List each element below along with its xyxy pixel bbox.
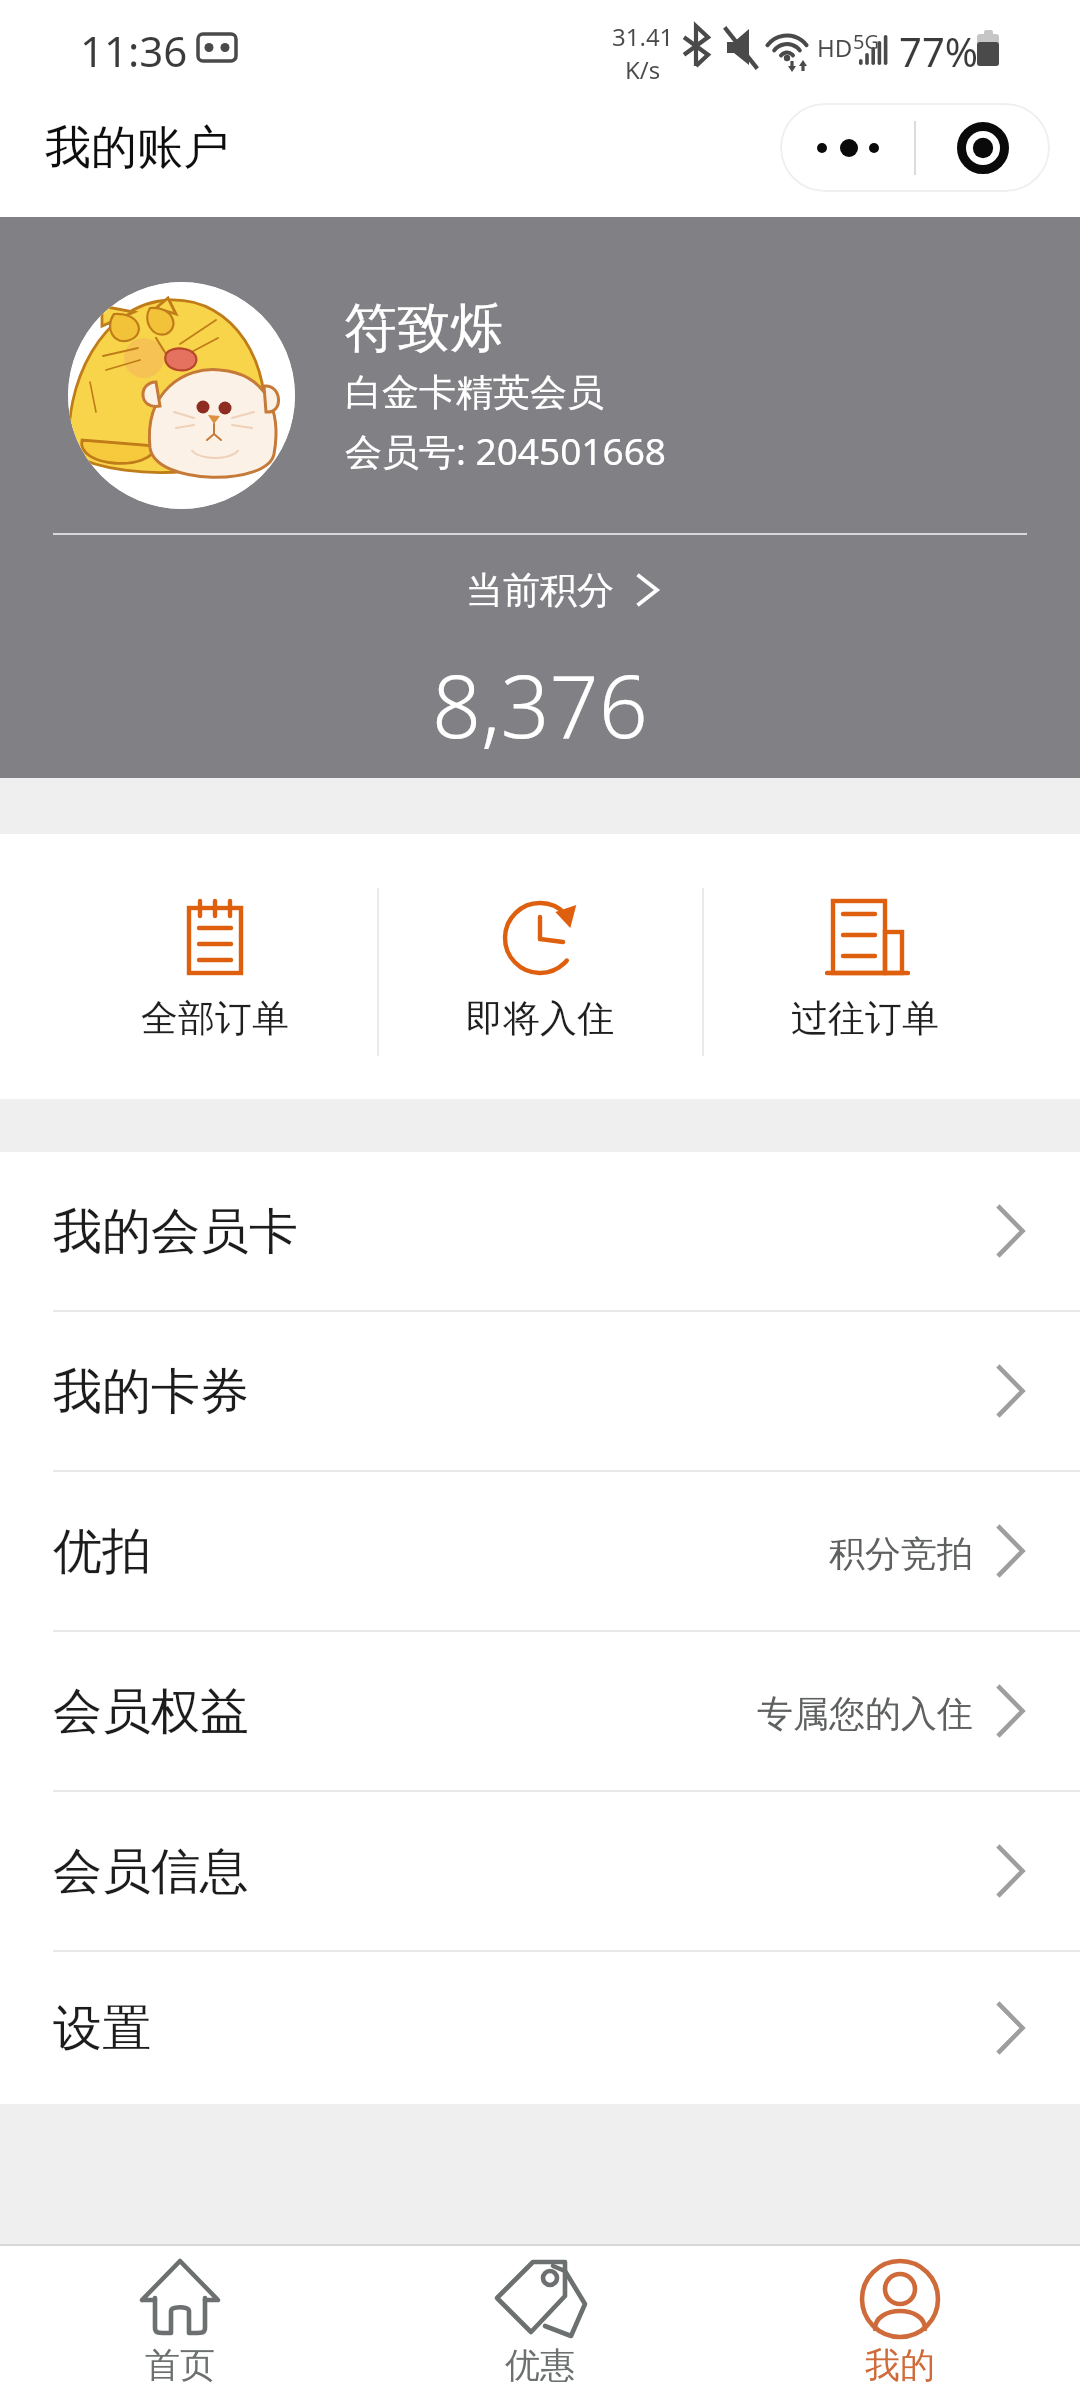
button[interactable]: 优惠 bbox=[360, 2246, 720, 2400]
staticText: 11:36 bbox=[80, 22, 188, 79]
staticText: 31.41 bbox=[612, 20, 674, 53]
staticText: 8,376 bbox=[432, 646, 648, 763]
staticText: 专属您的入住 bbox=[757, 1691, 973, 1736]
staticText: 过往订单 bbox=[791, 995, 939, 1042]
staticText: K/s bbox=[625, 53, 661, 86]
staticText: 首页 bbox=[145, 2343, 215, 2387]
button[interactable]: 首页 bbox=[0, 2246, 360, 2400]
staticText: 全部订单 bbox=[141, 995, 289, 1042]
button[interactable]: 设置 bbox=[0, 1952, 1080, 2104]
button[interactable]: Profile avatar bbox=[68, 282, 295, 509]
staticText: 白金卡精英会员 bbox=[345, 369, 604, 416]
staticText: 会员权益 bbox=[53, 1681, 249, 1743]
staticText: 即将入住 bbox=[466, 995, 614, 1042]
button[interactable]: 即将入住 bbox=[377, 834, 702, 1099]
staticText: 会员号: 204501668 bbox=[345, 425, 667, 476]
button[interactable]: 我的会员卡 bbox=[0, 1152, 1080, 1310]
staticText: 优拍 bbox=[53, 1521, 151, 1583]
staticText: 符致烁 bbox=[344, 295, 503, 362]
staticText: 我的 bbox=[865, 2343, 935, 2387]
button[interactable]: Close mini program bbox=[916, 103, 1050, 192]
staticText: 我的卡券 bbox=[53, 1361, 249, 1423]
button[interactable]: 过往订单 bbox=[702, 834, 1027, 1099]
staticText: 5G bbox=[853, 28, 879, 55]
staticText: 77% bbox=[899, 24, 978, 78]
button[interactable]: 会员权益 bbox=[0, 1632, 1080, 1790]
button[interactable]: 会员信息 bbox=[0, 1792, 1080, 1950]
staticText: 会员信息 bbox=[53, 1841, 249, 1903]
staticText: 我的会员卡 bbox=[53, 1201, 298, 1263]
staticText: 优惠 bbox=[505, 2343, 575, 2387]
button[interactable]: 我的卡券 bbox=[0, 1312, 1080, 1470]
button[interactable]: 优拍 bbox=[0, 1472, 1080, 1630]
staticText: 当前积分 bbox=[466, 567, 614, 614]
button[interactable]: More options bbox=[780, 103, 914, 192]
button[interactable]: 我的 bbox=[720, 2246, 1080, 2400]
staticText: 设置 bbox=[53, 1998, 151, 2060]
button[interactable]: 全部订单 bbox=[53, 834, 377, 1099]
staticText: 积分竞拍 bbox=[829, 1531, 973, 1576]
staticText: HD bbox=[817, 31, 853, 64]
button[interactable]: 当前积分 bbox=[0, 557, 1080, 623]
staticText: 我的账户 bbox=[45, 119, 229, 177]
